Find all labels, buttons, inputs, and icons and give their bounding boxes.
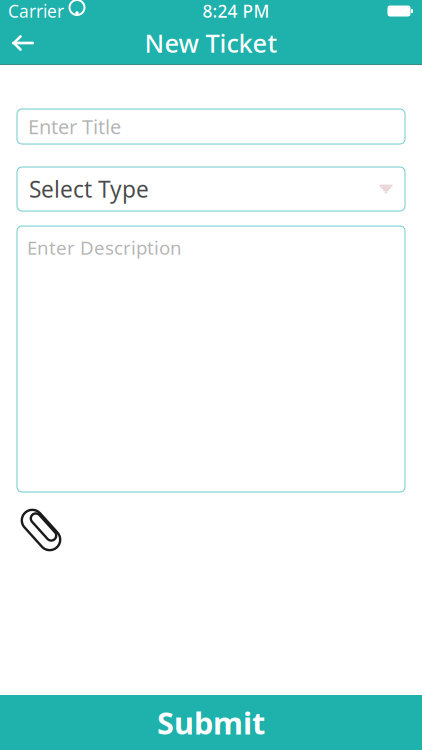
staticText: Enter Description: [27, 235, 182, 260]
staticText: Select Type: [29, 174, 149, 204]
button[interactable]: Add attachment: [17, 506, 65, 554]
staticText: New Ticket: [144, 26, 277, 60]
staticText: Carrier: [8, 0, 64, 22]
button[interactable]: Submit: [0, 695, 422, 750]
button[interactable]: Enter Description: [17, 226, 405, 492]
staticText: 8:24 PM: [202, 0, 269, 22]
staticText: Enter Title: [28, 113, 121, 140]
button[interactable]: Select Type: [17, 167, 405, 211]
staticText: Submit: [157, 702, 265, 743]
button[interactable]: Back: [0, 22, 46, 64]
button[interactable]: Enter Title: [17, 109, 405, 144]
